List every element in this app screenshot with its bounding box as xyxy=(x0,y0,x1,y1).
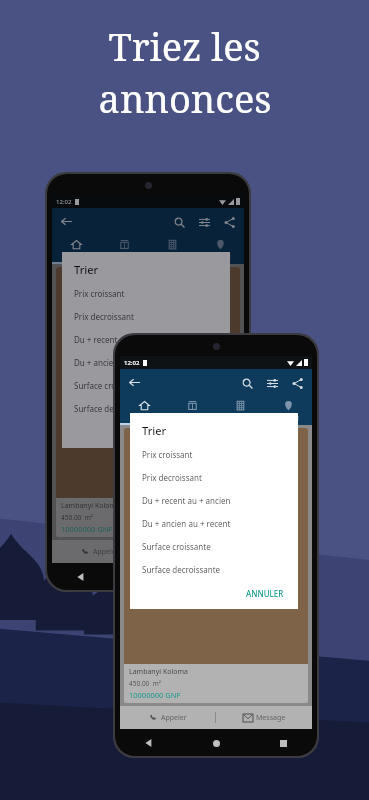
button[interactable]: Surface croissante xyxy=(74,380,218,391)
staticText: Prix croissant xyxy=(142,449,193,460)
button[interactable]: Recents xyxy=(208,570,222,584)
button[interactable]: Share xyxy=(288,374,306,392)
button[interactable]: Surface croissante xyxy=(142,541,286,552)
button[interactable]: Message xyxy=(148,540,244,563)
button[interactable]: Du + recent au + ancien xyxy=(74,334,218,345)
button[interactable]: Home xyxy=(209,736,223,750)
button[interactable]: Appeler xyxy=(52,540,147,563)
button[interactable]: Prix decroissant xyxy=(74,311,218,322)
button[interactable]: Back xyxy=(126,374,143,391)
staticText: Du + ancien au + recent xyxy=(74,357,163,368)
staticText: Surface croissante xyxy=(74,380,143,391)
button[interactable]: Appeler xyxy=(120,706,215,729)
staticText: Appeler xyxy=(93,547,119,557)
button[interactable]: Du + ancien au + recent xyxy=(142,518,286,529)
staticText: 10000000 GNF xyxy=(129,690,181,700)
button[interactable]: Back xyxy=(58,213,75,230)
staticText: Lambanyi Koloma xyxy=(129,667,188,677)
staticText: Prix decroissant xyxy=(74,311,134,322)
button[interactable]: PROJETS xyxy=(148,235,196,264)
button[interactable]: Search xyxy=(170,213,188,231)
button[interactable]: TERRAIN xyxy=(168,396,216,425)
button[interactable]: Share xyxy=(220,213,238,231)
staticText: 450.00 m² xyxy=(61,513,94,522)
button[interactable]: Du + recent au + ancien xyxy=(142,495,286,506)
staticText: 450.00 m² xyxy=(129,679,162,688)
staticText: Surface decroissante xyxy=(142,564,221,575)
button[interactable]: Message xyxy=(216,706,312,729)
staticText: Trier xyxy=(142,423,167,438)
staticText: annonces xyxy=(98,72,272,124)
button[interactable]: AGENCE xyxy=(264,396,312,425)
staticText: Prix decroissant xyxy=(142,472,202,483)
staticText: Message xyxy=(256,713,286,723)
button[interactable]: AGENCE xyxy=(196,235,244,264)
staticText: 10000000 GNF xyxy=(61,524,113,534)
staticText: Appeler xyxy=(161,713,187,723)
staticText: AGENCE xyxy=(208,253,232,261)
button[interactable]: Prix croissant xyxy=(142,449,286,460)
button[interactable]: Recents xyxy=(276,736,290,750)
staticText: ANNULER xyxy=(246,588,284,599)
staticText: Triez les xyxy=(108,20,261,72)
staticText: Message xyxy=(188,547,218,557)
button[interactable]: Filter xyxy=(195,213,213,231)
button[interactable]: Filter xyxy=(263,374,281,392)
staticText: 12:02 xyxy=(56,198,72,206)
button[interactable]: Prix croissant xyxy=(74,288,218,299)
button[interactable]: Back xyxy=(142,736,156,750)
staticText: Trier xyxy=(74,262,99,277)
button[interactable]: TERRAIN xyxy=(100,235,148,264)
button[interactable]: Back xyxy=(74,570,88,584)
button[interactable]: LOCAL xyxy=(120,396,168,425)
button[interactable]: Du + ancien au + recent xyxy=(74,357,218,368)
staticText: Lambanyi Koloma xyxy=(61,501,120,511)
staticText: Surface croissante xyxy=(142,541,211,552)
button[interactable]: ANNULER xyxy=(244,588,286,599)
staticText: Du + ancien au + recent xyxy=(142,518,231,529)
button[interactable]: Home xyxy=(141,570,155,584)
button[interactable]: Search xyxy=(238,374,256,392)
button[interactable]: LOCAL xyxy=(52,235,100,264)
staticText: Surface decroissante xyxy=(74,403,153,414)
staticText: AGENCE xyxy=(276,414,300,422)
button[interactable]: Surface decroissante xyxy=(74,403,218,414)
button[interactable]: Prix decroissant xyxy=(142,472,286,483)
staticText: Du + recent au + ancien xyxy=(142,495,231,506)
staticText: Prix croissant xyxy=(74,288,125,299)
button[interactable]: PROJETS xyxy=(216,396,264,425)
button[interactable]: Surface decroissante xyxy=(142,564,286,575)
staticText: Du + recent au + ancien xyxy=(74,334,163,345)
staticText: 12:02 xyxy=(124,359,140,367)
